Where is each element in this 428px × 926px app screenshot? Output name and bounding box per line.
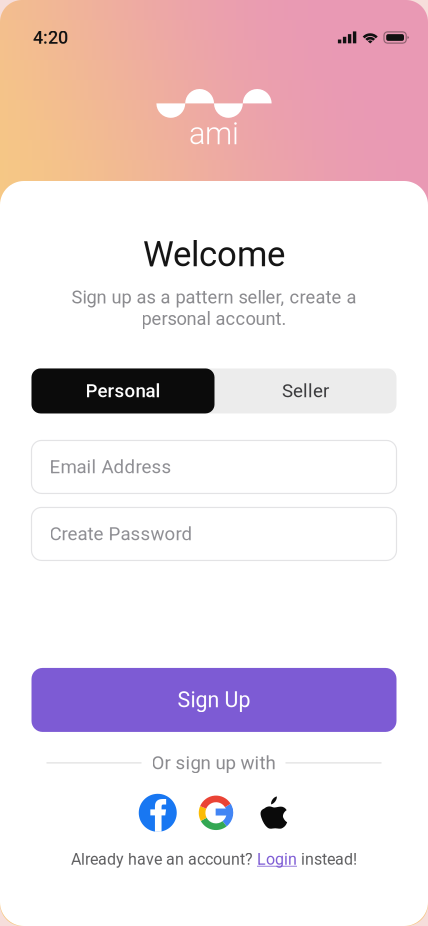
staticText: personal account. <box>141 308 286 329</box>
button[interactable]: Seller <box>214 368 396 413</box>
button[interactable]: Sign up with Facebook <box>139 794 177 832</box>
button[interactable]: Already have an account? <box>71 850 357 869</box>
staticText: Or sign up with <box>151 752 275 774</box>
button[interactable]: Sign up with Google <box>199 796 233 830</box>
button[interactable]: Sign up with Apple <box>258 796 289 830</box>
staticText: 4:20 <box>33 27 68 48</box>
staticText: Login <box>257 850 297 869</box>
staticText: Personal <box>85 380 160 402</box>
staticText: ami <box>189 116 239 152</box>
button[interactable]: Sign Up <box>31 668 396 732</box>
staticText: Sign Up <box>177 687 250 712</box>
staticText: instead! <box>297 850 357 869</box>
staticText: Welcome <box>143 234 285 275</box>
staticText: Sign up as a pattern seller, create a <box>71 287 356 308</box>
staticText: Already have an account? <box>71 850 257 869</box>
staticText: Email Address <box>49 456 171 478</box>
staticText: Seller <box>282 380 329 402</box>
button[interactable]: Personal <box>31 368 214 413</box>
staticText: Create Password <box>49 523 192 545</box>
